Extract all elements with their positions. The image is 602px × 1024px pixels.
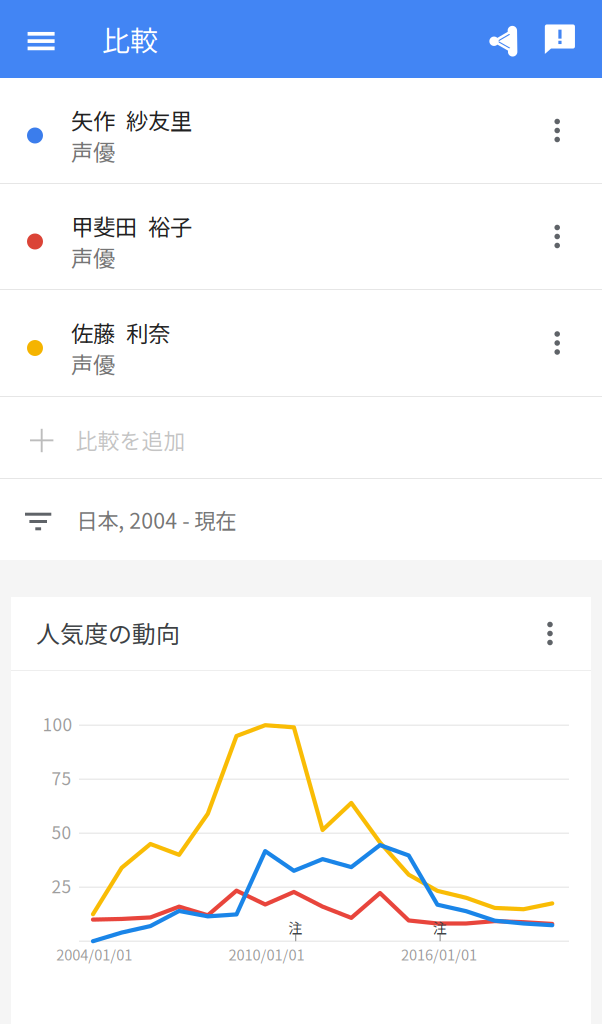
staticText: 日本, 2004 - 現在 (76, 504, 236, 535)
button[interactable]: 佐藤 利奈 (0, 290, 602, 396)
staticText: 佐藤 利奈 (71, 316, 170, 348)
staticText: 注 (433, 917, 447, 938)
staticText: 比較を追加 (75, 424, 185, 455)
button[interactable]: 比較 (55, 0, 168, 78)
staticText: 注 (288, 917, 302, 938)
staticText: 声優 (71, 135, 115, 167)
button[interactable]: 甲斐田 裕子 (0, 184, 602, 289)
staticText: 矢作 紗友里 (71, 104, 192, 136)
button[interactable]: 比較を追加 (0, 397, 602, 478)
staticText: 25 (51, 873, 71, 898)
button[interactable]: 矢作 紗友里 (0, 78, 602, 183)
button[interactable]: Send feedback (532, 0, 585, 78)
staticText: 2010/01/01 (228, 944, 304, 965)
staticText: 声優 (71, 347, 115, 380)
staticText: 50 (51, 819, 71, 844)
button[interactable]: Menu (0, 0, 55, 78)
staticText: 声優 (71, 241, 115, 273)
button[interactable]: Share (475, 0, 529, 78)
staticText: 人気度の動向 (36, 615, 180, 650)
staticText: 2016/01/01 (401, 944, 477, 965)
staticText: 比較 (102, 19, 158, 59)
staticText: 75 (51, 765, 71, 790)
button[interactable]: Chart options (532, 605, 568, 661)
staticText: 100 (42, 711, 72, 736)
staticText: 甲斐田 裕子 (71, 210, 192, 242)
staticText: 2004/01/01 (56, 944, 132, 965)
button[interactable]: 日本, 2004 - 現在 (0, 479, 602, 560)
